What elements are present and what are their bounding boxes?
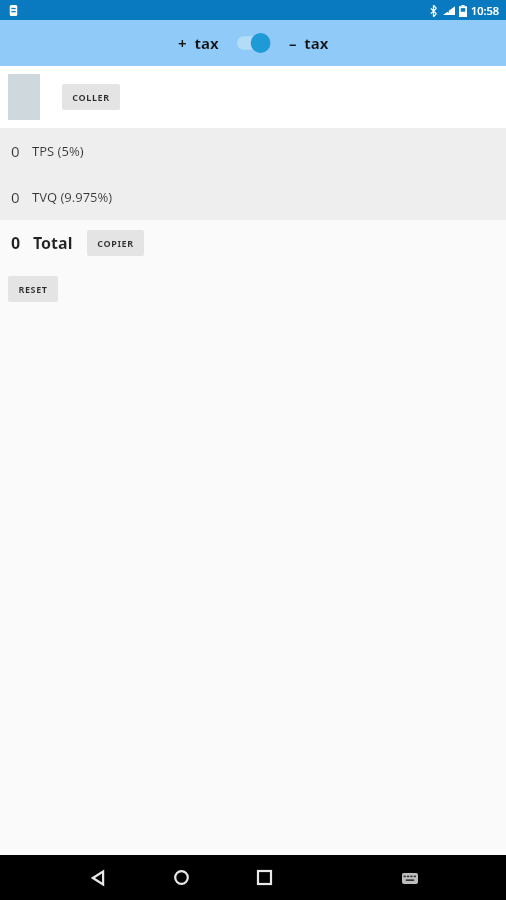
button[interactable]: 0 [0, 174, 506, 220]
button[interactable]: Back [75, 855, 121, 900]
button[interactable]: RESET [8, 276, 58, 302]
staticText: TPS (5%) [32, 142, 84, 160]
staticText: RESET [18, 283, 48, 295]
button[interactable]: Switch keyboard [390, 858, 430, 898]
staticText: 10:58 [471, 3, 500, 18]
staticText: TVQ (9.975%) [32, 188, 113, 206]
staticText: 0 [11, 187, 20, 207]
staticText: COLLER [72, 91, 110, 103]
button[interactable]: 0 [0, 128, 506, 174]
button[interactable]: COLLER [62, 84, 120, 110]
staticText: – tax [289, 33, 329, 53]
staticText: 0 [11, 232, 21, 254]
button[interactable] [237, 32, 275, 54]
staticText: Total [33, 232, 73, 254]
button[interactable]: Home [158, 855, 204, 900]
button[interactable]: COPIER [87, 230, 144, 256]
staticText: 0 [11, 141, 20, 161]
staticText: + tax [178, 33, 219, 53]
button[interactable]: Recent apps [241, 855, 287, 900]
staticText: COPIER [97, 237, 134, 249]
